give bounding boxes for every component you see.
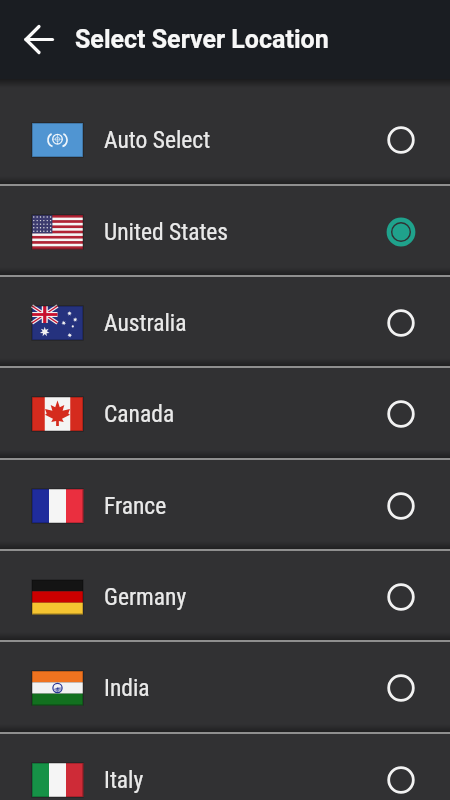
staticText: Canada (104, 400, 175, 428)
button[interactable]: Italy (0, 734, 450, 800)
button[interactable]: Germany (0, 551, 450, 642)
staticText: Germany (104, 583, 187, 611)
staticText: Auto Select (104, 126, 211, 154)
button[interactable]: France (0, 460, 450, 551)
button[interactable]: Canada (0, 368, 450, 460)
button[interactable]: Auto Select (0, 94, 450, 186)
button[interactable]: United States (0, 186, 450, 277)
button[interactable] (0, 0, 60, 60)
button[interactable]: India (0, 642, 450, 734)
staticText: United States (104, 218, 229, 246)
button[interactable]: Australia (0, 277, 450, 368)
staticText: Australia (104, 309, 187, 337)
staticText: Italy (104, 766, 144, 794)
staticText: Select Server Location (75, 25, 329, 54)
staticText: France (104, 492, 167, 520)
staticText: India (104, 674, 150, 702)
